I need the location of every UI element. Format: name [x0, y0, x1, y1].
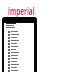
button[interactable] [4, 63, 34, 66]
button[interactable] [4, 48, 34, 51]
button[interactable] [4, 42, 34, 45]
button[interactable] [4, 45, 34, 48]
button[interactable] [4, 39, 34, 42]
button[interactable] [4, 30, 34, 33]
button[interactable] [4, 66, 34, 69]
button[interactable] [4, 54, 34, 57]
button[interactable]: imperial [8, 4, 35, 18]
button[interactable] [4, 57, 34, 60]
button[interactable] [4, 33, 34, 36]
button[interactable] [4, 51, 34, 54]
button[interactable] [4, 36, 34, 39]
button[interactable] [4, 69, 34, 72]
staticText: imperial [8, 4, 35, 18]
button[interactable] [4, 60, 34, 63]
